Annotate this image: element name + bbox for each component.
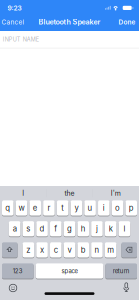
staticText: c (54, 245, 58, 255)
staticText: m (107, 245, 114, 255)
staticText: return (113, 267, 130, 275)
staticText: t (61, 203, 64, 213)
button[interactable]: k (105, 221, 116, 237)
staticText: z (26, 245, 30, 255)
button[interactable]: Emoji (6, 281, 19, 294)
button[interactable]: m (105, 242, 116, 258)
staticText: Cancel (1, 18, 24, 26)
staticText: y (74, 203, 78, 213)
button[interactable]: v (64, 242, 75, 258)
button[interactable]: Done (116, 16, 137, 28)
staticText: f (54, 224, 57, 233)
button[interactable]: f (50, 221, 62, 237)
button[interactable]: b (77, 242, 89, 258)
staticText: s (26, 224, 30, 233)
button[interactable]: y (71, 200, 82, 216)
button[interactable]: u (84, 200, 96, 216)
button[interactable]: o (112, 200, 123, 216)
staticText: space (61, 267, 77, 275)
staticText: r (47, 203, 50, 213)
button[interactable]: x (36, 242, 48, 258)
button[interactable]: Cancel (0, 16, 26, 28)
staticText: INPUT NAME (3, 36, 39, 43)
staticText: g (67, 224, 72, 233)
button[interactable]: d (36, 221, 48, 237)
button[interactable]: w (16, 200, 27, 216)
button[interactable]: Shift (2, 242, 18, 258)
staticText: o (115, 203, 120, 213)
button[interactable]: e (29, 200, 41, 216)
staticText: l (123, 224, 125, 233)
button[interactable]: Delete (121, 242, 137, 258)
button[interactable]: r (43, 200, 55, 216)
button[interactable]: the (49, 187, 89, 200)
staticText: q (5, 203, 10, 213)
staticText: Bluetooth Speaker (38, 18, 100, 26)
button[interactable]: I (3, 187, 43, 200)
button[interactable]: l (119, 221, 130, 237)
button[interactable]: g (64, 221, 75, 237)
staticText: u (88, 203, 93, 213)
button[interactable]: c (50, 242, 62, 258)
button[interactable]: 123 (2, 263, 34, 279)
staticText: a (13, 224, 17, 233)
staticText: the (64, 189, 74, 197)
staticText: h (81, 224, 86, 233)
button[interactable]: p (125, 200, 137, 216)
button[interactable]: a (9, 221, 20, 237)
staticText: k (109, 224, 113, 233)
button[interactable]: h (77, 221, 89, 237)
staticText: v (67, 245, 71, 255)
staticText: I'm (111, 189, 121, 197)
button[interactable]: t (57, 200, 68, 216)
staticText: 9:23 (7, 4, 21, 12)
staticText: I (22, 189, 24, 197)
button[interactable]: I'm (96, 187, 136, 200)
button[interactable]: i (98, 200, 110, 216)
staticText: w (18, 203, 24, 213)
staticText: n (94, 245, 99, 255)
staticText: d (40, 224, 45, 233)
staticText: p (129, 203, 134, 213)
button[interactable]: Dictation (120, 281, 133, 294)
button[interactable]: s (23, 221, 34, 237)
staticText: 123 (13, 267, 23, 275)
staticText: j (96, 224, 98, 233)
button[interactable]: return (105, 263, 137, 279)
button[interactable]: z (23, 242, 34, 258)
button[interactable]: n (91, 242, 103, 258)
button[interactable]: q (2, 200, 14, 216)
staticText: i (103, 203, 105, 213)
staticText: e (33, 203, 38, 213)
button[interactable]: Input Name (0, 31, 139, 48)
button[interactable]: space (36, 263, 103, 279)
staticText: Done (118, 18, 135, 26)
staticText: b (81, 245, 86, 255)
staticText: x (40, 245, 44, 255)
button[interactable]: j (91, 221, 103, 237)
